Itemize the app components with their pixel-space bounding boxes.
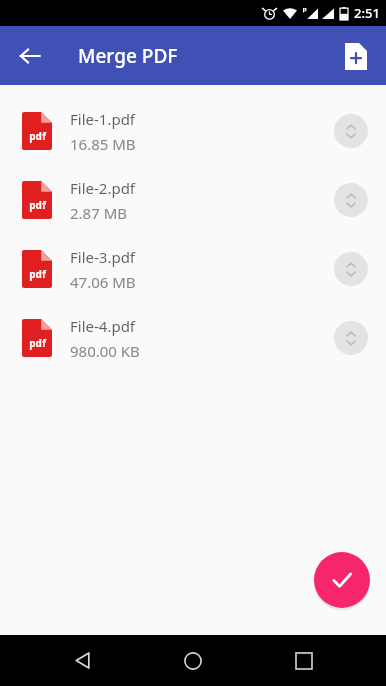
staticText: 2.87 MB — [70, 203, 128, 223]
button[interactable]: Recents — [276, 635, 332, 686]
staticText: 47.06 MB — [70, 272, 136, 292]
button[interactable]: Back — [55, 635, 111, 686]
staticText: File-1.pdf — [70, 109, 136, 129]
button[interactable]: Reorder — [334, 114, 368, 148]
button[interactable]: Home — [165, 635, 221, 686]
staticText: pdf — [29, 336, 46, 350]
staticText: File-2.pdf — [70, 178, 136, 198]
button[interactable]: Reorder — [334, 252, 368, 286]
staticText: pdf — [29, 267, 46, 281]
button[interactable]: pdf — [0, 310, 386, 366]
staticText: pdf — [29, 129, 46, 143]
button[interactable]: Reorder — [334, 183, 368, 217]
staticText: 980.00 KB — [70, 341, 140, 361]
button[interactable]: pdf — [0, 172, 386, 228]
button[interactable]: Reorder — [334, 321, 368, 355]
staticText: 16.85 MB — [70, 134, 136, 154]
staticText: File-3.pdf — [70, 247, 136, 267]
button[interactable]: Add file — [334, 34, 378, 78]
button[interactable]: Merge — [314, 552, 370, 608]
staticText: 2:51 — [354, 4, 380, 22]
staticText: Merge PDF — [78, 43, 178, 69]
button[interactable]: pdf — [0, 241, 386, 297]
button[interactable]: pdf — [0, 103, 386, 159]
staticText: pdf — [29, 198, 46, 212]
button[interactable]: Back — [8, 34, 52, 78]
staticText: File-4.pdf — [70, 316, 136, 336]
